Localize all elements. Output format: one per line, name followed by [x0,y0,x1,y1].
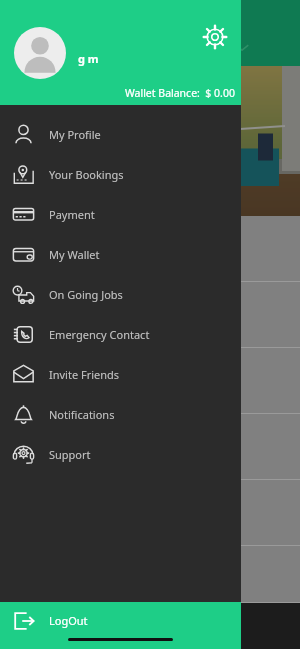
staticText: Emergency Contact [49,327,150,342]
staticText: On Going Jobs [49,287,123,302]
staticText: Invite Friends [49,367,120,382]
staticText: g m [78,51,99,66]
button[interactable]: Payment [0,194,241,234]
button[interactable]: My Profile [0,114,241,154]
button[interactable]: Settings [202,24,228,50]
button[interactable]: Invite Friends [0,354,241,394]
button[interactable]: Emergency Contact [0,314,241,354]
staticText: Payment [49,207,95,222]
button[interactable]: On Going Jobs [0,274,241,314]
button[interactable]: Notifications [0,394,241,434]
staticText: Your Bookings [49,167,124,182]
staticText: Notifications [49,407,115,422]
button[interactable]: Profile photo [14,27,66,79]
button[interactable]: Your Bookings [0,154,241,194]
button[interactable]: LogOut [0,602,241,649]
button[interactable]: Support [0,434,241,474]
staticText: Support [49,447,91,462]
staticText: LogOut [49,613,88,628]
staticText: Wallet Balance: $ 0.00 [125,86,235,100]
staticText: My Wallet [49,247,100,262]
staticText: My Profile [49,127,101,142]
button[interactable]: My Wallet [0,234,241,274]
